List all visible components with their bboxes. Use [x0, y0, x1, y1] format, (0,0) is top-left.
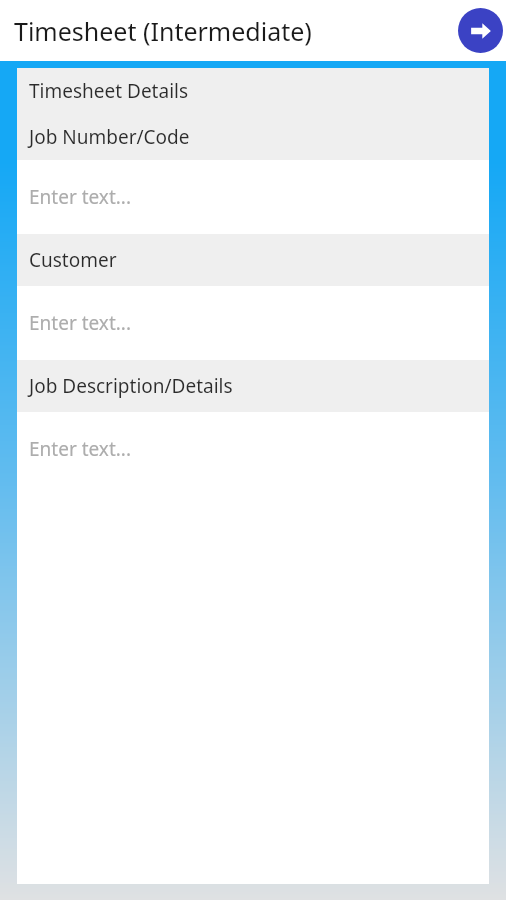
- button[interactable]: Enter text...: [17, 412, 489, 486]
- button[interactable]: Enter text...: [17, 286, 489, 360]
- staticText: Timesheet Details: [29, 78, 189, 104]
- staticText: Job Number/Code: [29, 124, 190, 150]
- button[interactable]: Job Description/Details: [17, 360, 489, 412]
- button[interactable]: Enter text...: [17, 160, 489, 234]
- staticText: Customer: [29, 247, 117, 273]
- staticText: Enter text...: [29, 436, 132, 462]
- button[interactable]: Customer: [17, 234, 489, 286]
- staticText: Enter text...: [29, 184, 132, 210]
- button[interactable]: Next: [458, 8, 503, 53]
- staticText: Timesheet (Intermediate): [14, 14, 312, 48]
- staticText: Enter text...: [29, 310, 132, 336]
- staticText: Job Description/Details: [29, 373, 233, 399]
